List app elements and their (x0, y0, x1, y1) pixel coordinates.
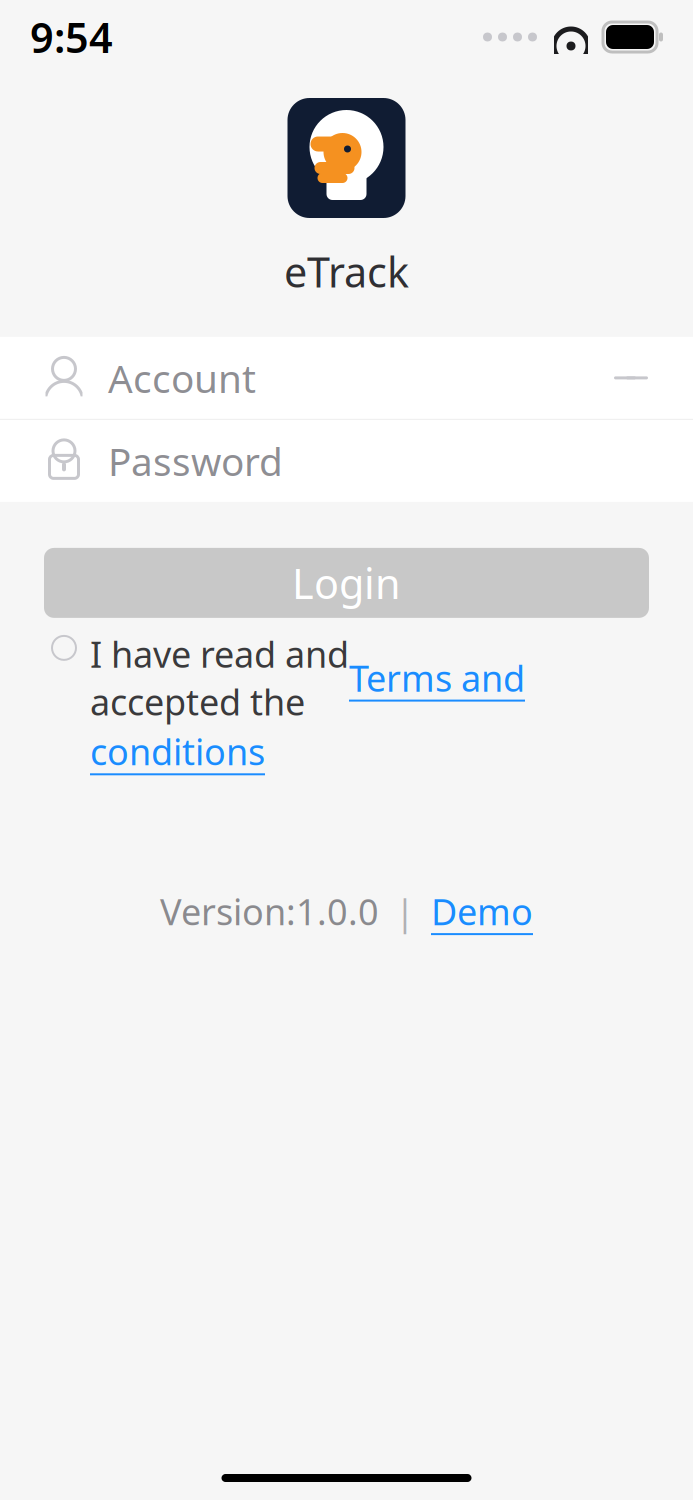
staticText: Login (292, 555, 401, 610)
button[interactable]: I have read and accepted the (0, 630, 693, 775)
staticText: | (395, 887, 415, 935)
staticText: Account (108, 352, 256, 403)
staticText: Terms and (349, 654, 525, 702)
button[interactable]: Password (0, 420, 693, 502)
staticText: I have read and accepted the (90, 630, 349, 725)
staticText: conditions (90, 727, 265, 775)
button[interactable]: Demo (431, 887, 533, 935)
button[interactable]: Account (0, 337, 693, 419)
staticText: Demo (431, 887, 533, 935)
staticText: Version:1.0.0 (160, 887, 379, 935)
staticText: 9:54 (30, 10, 113, 64)
button[interactable]: Login (44, 548, 649, 618)
staticText: Password (108, 435, 283, 486)
staticText: eTrack (284, 244, 409, 299)
